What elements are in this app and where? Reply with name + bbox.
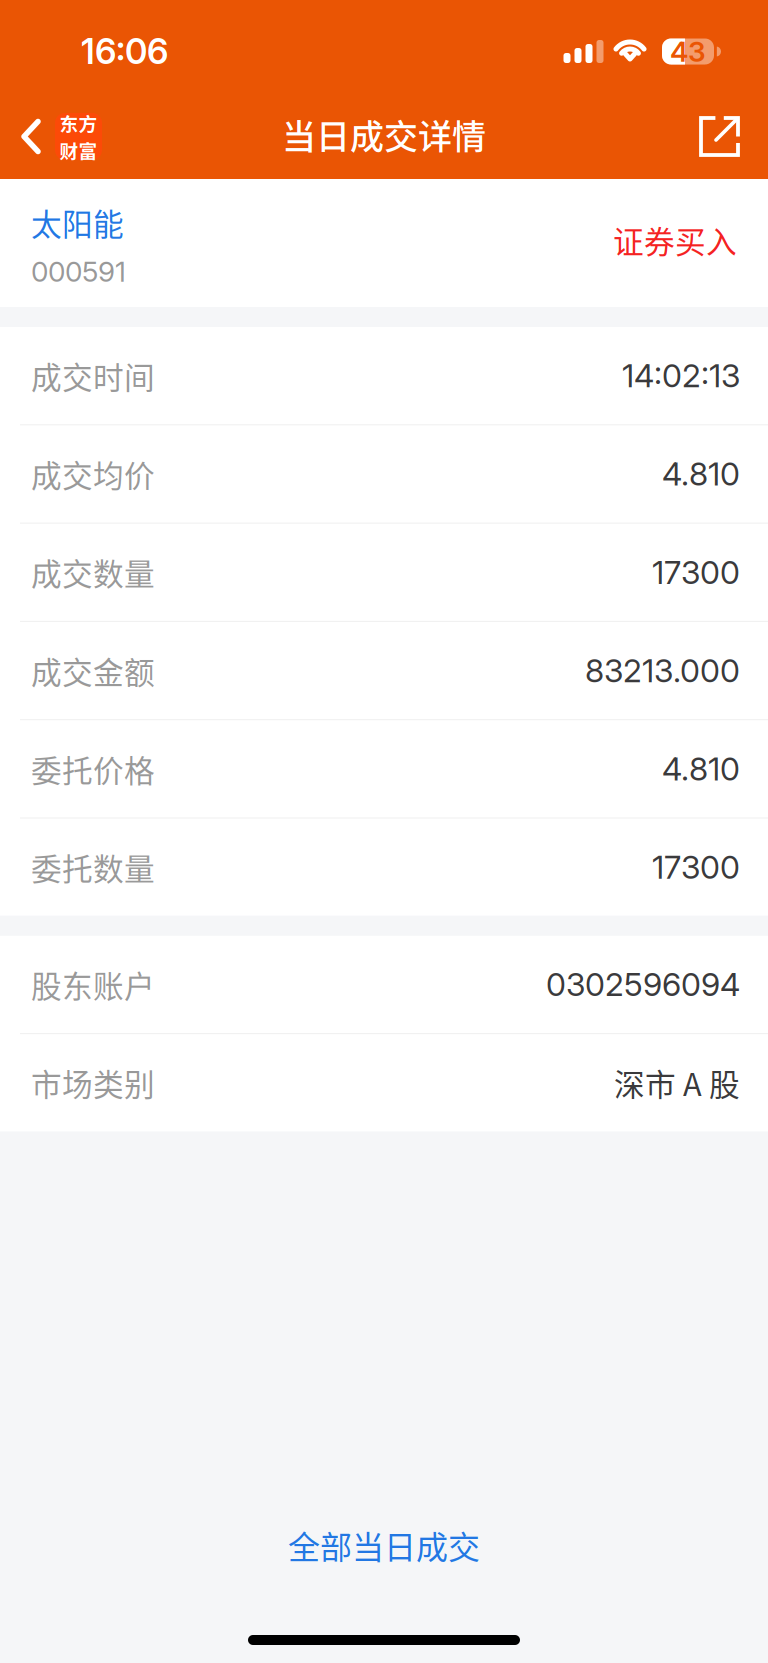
- staticText: 4.810: [662, 455, 740, 493]
- staticText: 17300: [652, 553, 740, 592]
- staticText: 4.810: [662, 749, 740, 788]
- staticText: 0302596094: [546, 965, 740, 1004]
- staticText: 成交金额: [31, 648, 155, 693]
- staticText: 17300: [652, 848, 740, 886]
- staticText: 证券买入: [613, 218, 737, 262]
- staticText: 委托数量: [31, 845, 155, 889]
- staticText: 全部当日成交: [288, 1522, 480, 1568]
- staticText: 成交时间: [31, 353, 155, 398]
- staticText: 83213.000: [585, 651, 740, 690]
- staticText: 财富: [59, 136, 97, 163]
- staticText: 委托价格: [31, 747, 155, 791]
- staticText: 000591: [31, 255, 126, 288]
- button[interactable]: Back: [0, 94, 116, 179]
- button[interactable]: 全部当日成交: [0, 1505, 768, 1585]
- staticText: 当日成交详情: [282, 110, 486, 159]
- staticText: 市场类别: [31, 1060, 155, 1105]
- staticText: 14:02:13: [622, 356, 740, 395]
- staticText: 成交数量: [31, 550, 155, 594]
- staticText: 成交均价: [31, 452, 155, 496]
- staticText: 43: [670, 35, 706, 68]
- staticText: 股东账户: [31, 962, 155, 1007]
- staticText: 深市 A 股: [614, 1060, 740, 1105]
- staticText: 16:06: [81, 30, 168, 72]
- button[interactable]: Share: [679, 94, 768, 179]
- staticText: 东方: [59, 109, 97, 136]
- staticText: 太阳能: [31, 200, 124, 245]
